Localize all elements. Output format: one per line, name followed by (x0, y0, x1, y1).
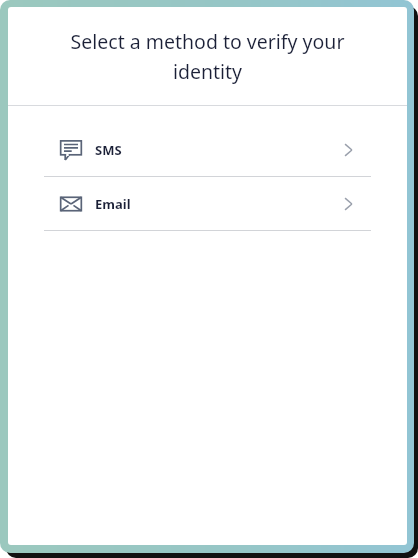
button[interactable]: Email envelope icon (8, 177, 407, 230)
staticText: Select a method to verify your identity (60, 28, 355, 84)
staticText: SMS (95, 141, 122, 159)
other: Email envelope icon (58, 191, 84, 217)
other: SMS message icon (58, 137, 84, 163)
button[interactable]: SMS message icon (8, 123, 407, 176)
staticText: Email (95, 195, 131, 213)
